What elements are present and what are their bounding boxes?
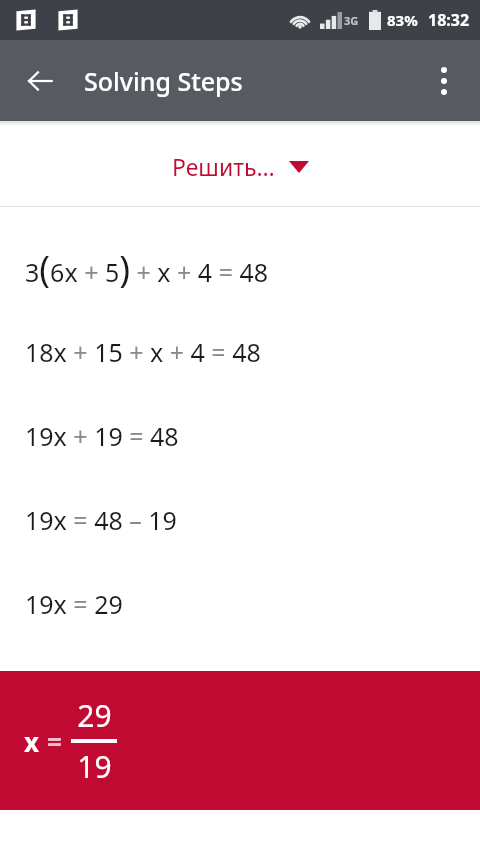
staticText: x (24, 724, 40, 759)
staticText: 18:32 (428, 9, 470, 31)
button[interactable]: Решить… (160, 143, 321, 190)
staticText: 19x = 29 (25, 587, 123, 621)
staticText: 19x = 48 – 19 (25, 503, 177, 537)
staticText: 29 (77, 695, 112, 736)
staticText: 3G (344, 13, 359, 28)
staticText: Решить… (172, 151, 275, 182)
button[interactable]: Back (12, 53, 68, 109)
button[interactable]: x (0, 671, 480, 810)
button[interactable]: 19x = 48 – 19 (0, 478, 480, 562)
button[interactable]: 3(6x + 5) + x + 4 = 48 (0, 226, 480, 310)
staticText: 83% (387, 10, 418, 30)
button[interactable]: Solving Steps (84, 64, 243, 98)
staticText: 19x + 19 = 48 (25, 419, 179, 453)
button[interactable]: 19x + 19 = 48 (0, 394, 480, 478)
staticText: = (47, 724, 62, 759)
button[interactable]: More options (418, 55, 470, 107)
button[interactable]: 18x + 15 + x + 4 = 48 (0, 310, 480, 394)
staticText: 3(6x + 5) + x + 4 = 48 (25, 244, 269, 293)
staticText: 18x + 15 + x + 4 = 48 (25, 335, 261, 369)
staticText: Solving Steps (84, 64, 243, 98)
staticText: 19 (77, 746, 112, 787)
button[interactable]: 19x = 29 (0, 562, 480, 646)
